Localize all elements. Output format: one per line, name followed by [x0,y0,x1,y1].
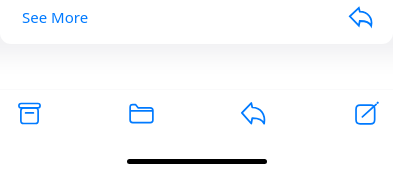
button[interactable]: See More [0,0,393,44]
button[interactable]: Reply [349,7,373,27]
button[interactable]: Move to folder [119,91,163,135]
button[interactable]: Archive [7,91,51,135]
button[interactable]: Compose [344,91,388,135]
staticText: See More [22,7,89,27]
button[interactable]: Reply [231,91,275,135]
